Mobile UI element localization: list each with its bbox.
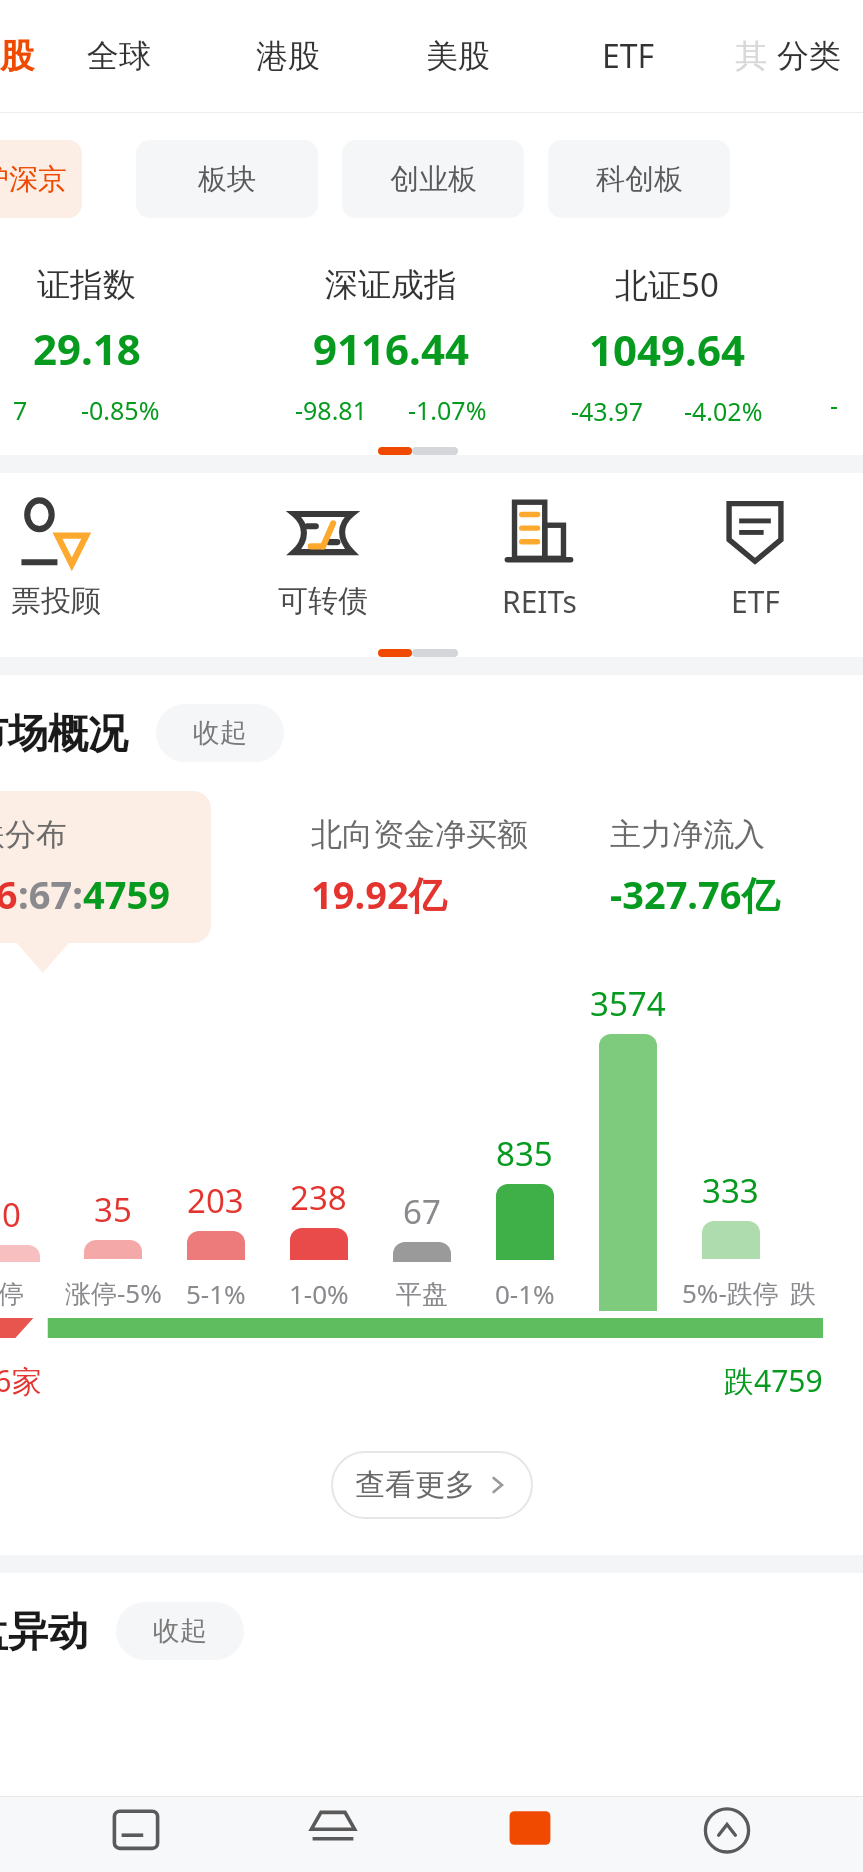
button[interactable]: 可转债 [215, 473, 431, 643]
staticText: 沪深京 [0, 161, 67, 198]
staticText: - [830, 388, 839, 422]
staticText: -4.02% [684, 394, 763, 428]
staticText: 板块 [198, 161, 256, 198]
staticText: 06 [0, 868, 18, 920]
staticText: 票投顾 [11, 582, 101, 620]
button[interactable]: 证指数 [0, 245, 213, 445]
staticText: 股 [0, 35, 34, 78]
button[interactable]: 沪深京 [0, 140, 82, 218]
staticText: 北向资金净买额 [311, 815, 528, 854]
staticText: 科创板 [596, 161, 683, 198]
staticText: 跌分布 [0, 815, 67, 854]
staticText: 创业板 [390, 161, 477, 198]
button[interactable]: Home [101, 1804, 171, 1872]
staticText: 收起 [153, 1614, 207, 1648]
button[interactable]: 科创板 [548, 140, 730, 218]
staticText: -1.07% [408, 393, 487, 427]
staticText: 盘异动 [0, 1606, 88, 1656]
staticText: ETF [602, 34, 655, 78]
staticText: 其 [735, 36, 767, 76]
staticText: 北证50 [615, 262, 719, 307]
staticText: 506家 [0, 1360, 42, 1401]
staticText: 分类 [777, 36, 841, 76]
staticText: 238 [290, 1175, 347, 1220]
button[interactable]: 板块 [136, 140, 318, 218]
button[interactable]: 收起 [116, 1602, 244, 1660]
staticText: 市场概况 [0, 708, 128, 758]
staticText: 1049.64 [589, 321, 745, 378]
staticText: 0 [2, 1192, 21, 1237]
staticText: 收起 [193, 716, 247, 750]
button[interactable]: Profile [692, 1804, 762, 1872]
staticText: 证指数 [37, 264, 136, 306]
button[interactable]: 全球 [34, 0, 203, 112]
button[interactable]: 主力净流入 [584, 791, 863, 943]
staticText: 停 [0, 1278, 24, 1311]
staticText: 5%-跌停 [682, 1275, 779, 1311]
staticText: 平盘 [396, 1278, 448, 1311]
staticText: 835 [496, 1131, 553, 1176]
staticText: -98.81 [295, 393, 367, 427]
button[interactable]: 创业板 [342, 140, 524, 218]
button[interactable]: ETF [543, 0, 713, 112]
button[interactable]: 美股 [373, 0, 543, 112]
staticText: 全球 [87, 36, 151, 76]
button[interactable]: 北证50 [529, 245, 805, 445]
staticText: 查看更多 [355, 1466, 475, 1504]
staticText: 跌 [790, 1278, 816, 1311]
staticText: 9116.44 [313, 320, 469, 377]
button[interactable]: 查看更多 [332, 1452, 532, 1518]
staticText: 35 [94, 1187, 132, 1232]
staticText: -43.97 [571, 394, 643, 428]
button[interactable]: 港股 [203, 0, 373, 112]
staticText: 涨停-5% [65, 1275, 162, 1311]
button[interactable]: REITs [431, 473, 647, 643]
staticText: 1-0% [289, 1276, 349, 1311]
button[interactable]: 股 [0, 0, 34, 112]
staticText: -0.85% [81, 393, 160, 427]
staticText: 333 [702, 1168, 759, 1213]
staticText: :67: [18, 868, 83, 920]
button[interactable]: 跌分布 [0, 791, 211, 943]
button[interactable]: 收起 [156, 704, 284, 762]
staticText: 19.92亿 [311, 868, 447, 920]
staticText: 美股 [426, 36, 490, 76]
button[interactable]: 其 [713, 0, 863, 112]
staticText: 67 [403, 1189, 441, 1234]
staticText: REITs [502, 581, 577, 622]
staticText: 港股 [256, 36, 320, 76]
staticText: 203 [187, 1178, 244, 1223]
staticText: 主力净流入 [610, 815, 765, 854]
staticText: 可转债 [278, 582, 368, 620]
staticText: -327.76亿 [610, 868, 780, 920]
staticText: 7 [13, 393, 28, 427]
staticText: 跌4759 [724, 1360, 823, 1401]
button[interactable]: - [805, 245, 863, 445]
staticText: 3574 [590, 981, 666, 1026]
button[interactable]: 北向资金净买额 [285, 791, 564, 943]
button[interactable]: Markets [298, 1804, 368, 1872]
staticText: 29.18 [33, 320, 141, 377]
staticText: 0-1% [495, 1276, 555, 1311]
staticText: 4759 [83, 868, 170, 920]
button[interactable]: 票投顾 [0, 473, 163, 643]
staticText: 5-1% [186, 1276, 246, 1311]
button[interactable]: ETF [647, 473, 863, 643]
button[interactable]: 深证成指 [253, 245, 529, 445]
staticText: 深证成指 [325, 264, 457, 306]
staticText: ETF [731, 581, 780, 622]
button[interactable]: Trade [495, 1804, 565, 1872]
